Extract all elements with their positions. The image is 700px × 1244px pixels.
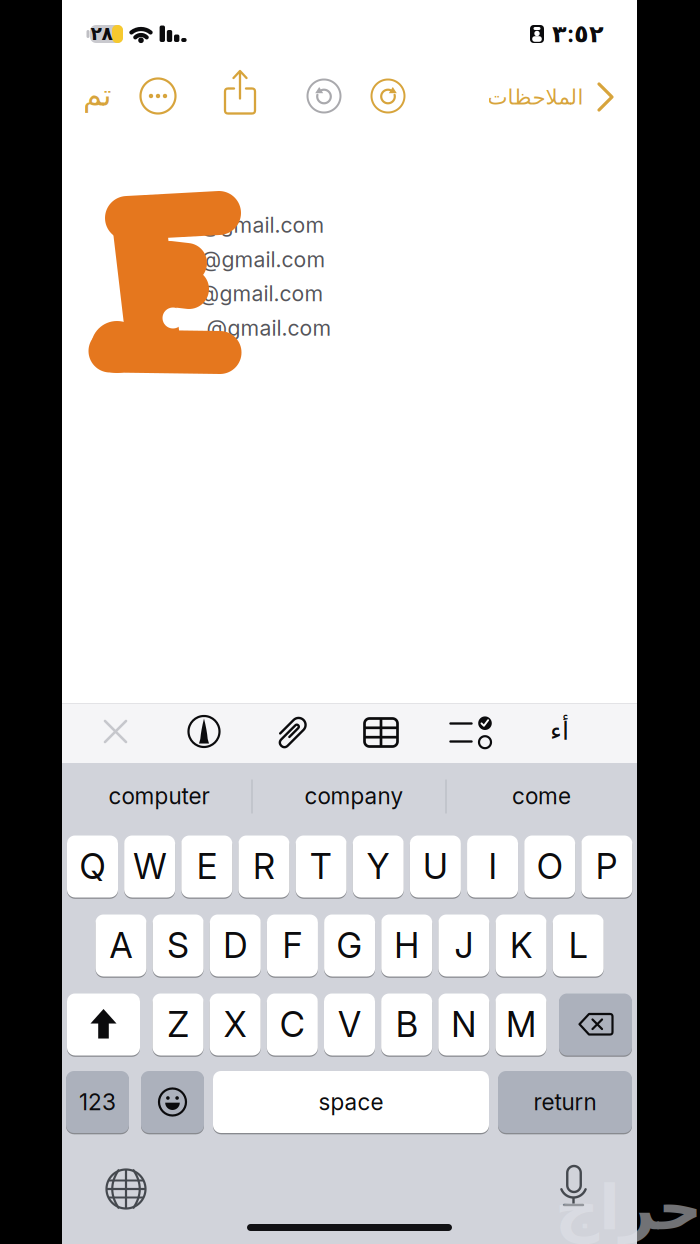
button[interactable] [302,74,346,118]
button[interactable]: M [495,992,546,1056]
button[interactable]: 123 [66,1070,129,1134]
button[interactable]: C [267,992,318,1056]
staticText: S [167,925,189,966]
staticText: K [510,925,532,966]
button[interactable]: K [495,913,546,977]
staticText: D [223,925,247,966]
staticText: أء [549,717,568,745]
staticText: V [338,1004,361,1045]
button[interactable]: T [296,834,347,898]
button[interactable]: return [498,1070,632,1134]
button[interactable]: A [95,913,146,977]
staticText: تم [82,78,111,112]
button[interactable] [546,1159,602,1215]
button[interactable]: الملاحظات [470,72,620,122]
button[interactable]: S [153,913,204,977]
staticText: H [394,925,419,966]
button[interactable]: V [324,992,375,1056]
staticText: P [596,846,618,887]
staticText: U [423,846,448,887]
button[interactable]: أء [537,706,581,756]
staticText: 123 [79,1089,116,1115]
button[interactable]: I [467,834,518,898]
staticText: R [253,846,275,887]
button[interactable]: J [438,913,489,977]
staticText: computer [108,783,209,809]
staticText: ٣:٥٢ [552,19,604,48]
button[interactable]: O [524,834,575,898]
button[interactable]: space [213,1070,489,1134]
staticText: company [304,783,403,809]
staticText: B [396,1004,418,1045]
staticText: N [451,1004,476,1045]
staticText: L [569,925,588,966]
staticText: C [280,1004,305,1045]
button[interactable] [67,992,140,1056]
staticText: O [537,846,563,887]
button[interactable] [136,74,180,118]
staticText: E [197,846,217,887]
staticText: W [133,846,166,887]
staticText: Q [79,846,105,887]
staticText: F [282,925,302,966]
button[interactable]: D [210,913,261,977]
button[interactable]: Q [67,834,118,898]
staticText: space [318,1089,383,1115]
button[interactable]: H [381,913,432,977]
staticText: Z [168,1004,189,1045]
button[interactable] [141,1070,204,1134]
button[interactable] [559,992,632,1056]
button[interactable]: come [486,764,596,828]
button[interactable]: U [410,834,461,898]
button[interactable]: N [438,992,489,1056]
button[interactable]: X [210,992,261,1056]
button[interactable]: تم [72,73,122,117]
staticText: X [224,1004,247,1045]
button[interactable]: computer [79,764,239,828]
staticText: G [337,925,363,966]
staticText: come [512,783,571,809]
staticText: return [533,1089,596,1115]
button[interactable]: B [381,992,432,1056]
staticText: حراج [554,1173,700,1243]
button[interactable]: G [324,913,375,977]
staticText: T [310,846,332,887]
staticText: Y [367,846,390,887]
button[interactable]: Y [353,834,404,898]
button[interactable]: company [274,764,434,828]
button[interactable] [93,706,137,756]
staticText: J [454,925,473,966]
button[interactable]: E [181,834,232,898]
button[interactable]: P [581,834,632,898]
button[interactable] [182,706,226,756]
staticText: @gmail.com [206,315,331,341]
button[interactable] [359,707,403,757]
staticText: @gmail.com [198,281,323,306]
staticText: ٢٨ [90,23,112,44]
staticText: @gmail.com [199,212,324,238]
staticText: M [506,1004,536,1045]
button[interactable] [218,63,262,119]
button[interactable]: F [267,913,318,977]
staticText: I [489,846,497,887]
staticText: A [109,925,132,966]
button[interactable]: W [124,834,175,898]
button[interactable] [366,74,410,118]
button[interactable]: R [238,834,289,898]
staticText: الملاحظات [487,85,583,109]
button[interactable] [269,707,313,757]
button[interactable]: Z [153,992,204,1056]
button[interactable]: L [553,913,604,977]
button[interactable] [452,707,496,757]
button[interactable] [98,1161,154,1217]
staticText: @gmail.com [200,247,325,272]
